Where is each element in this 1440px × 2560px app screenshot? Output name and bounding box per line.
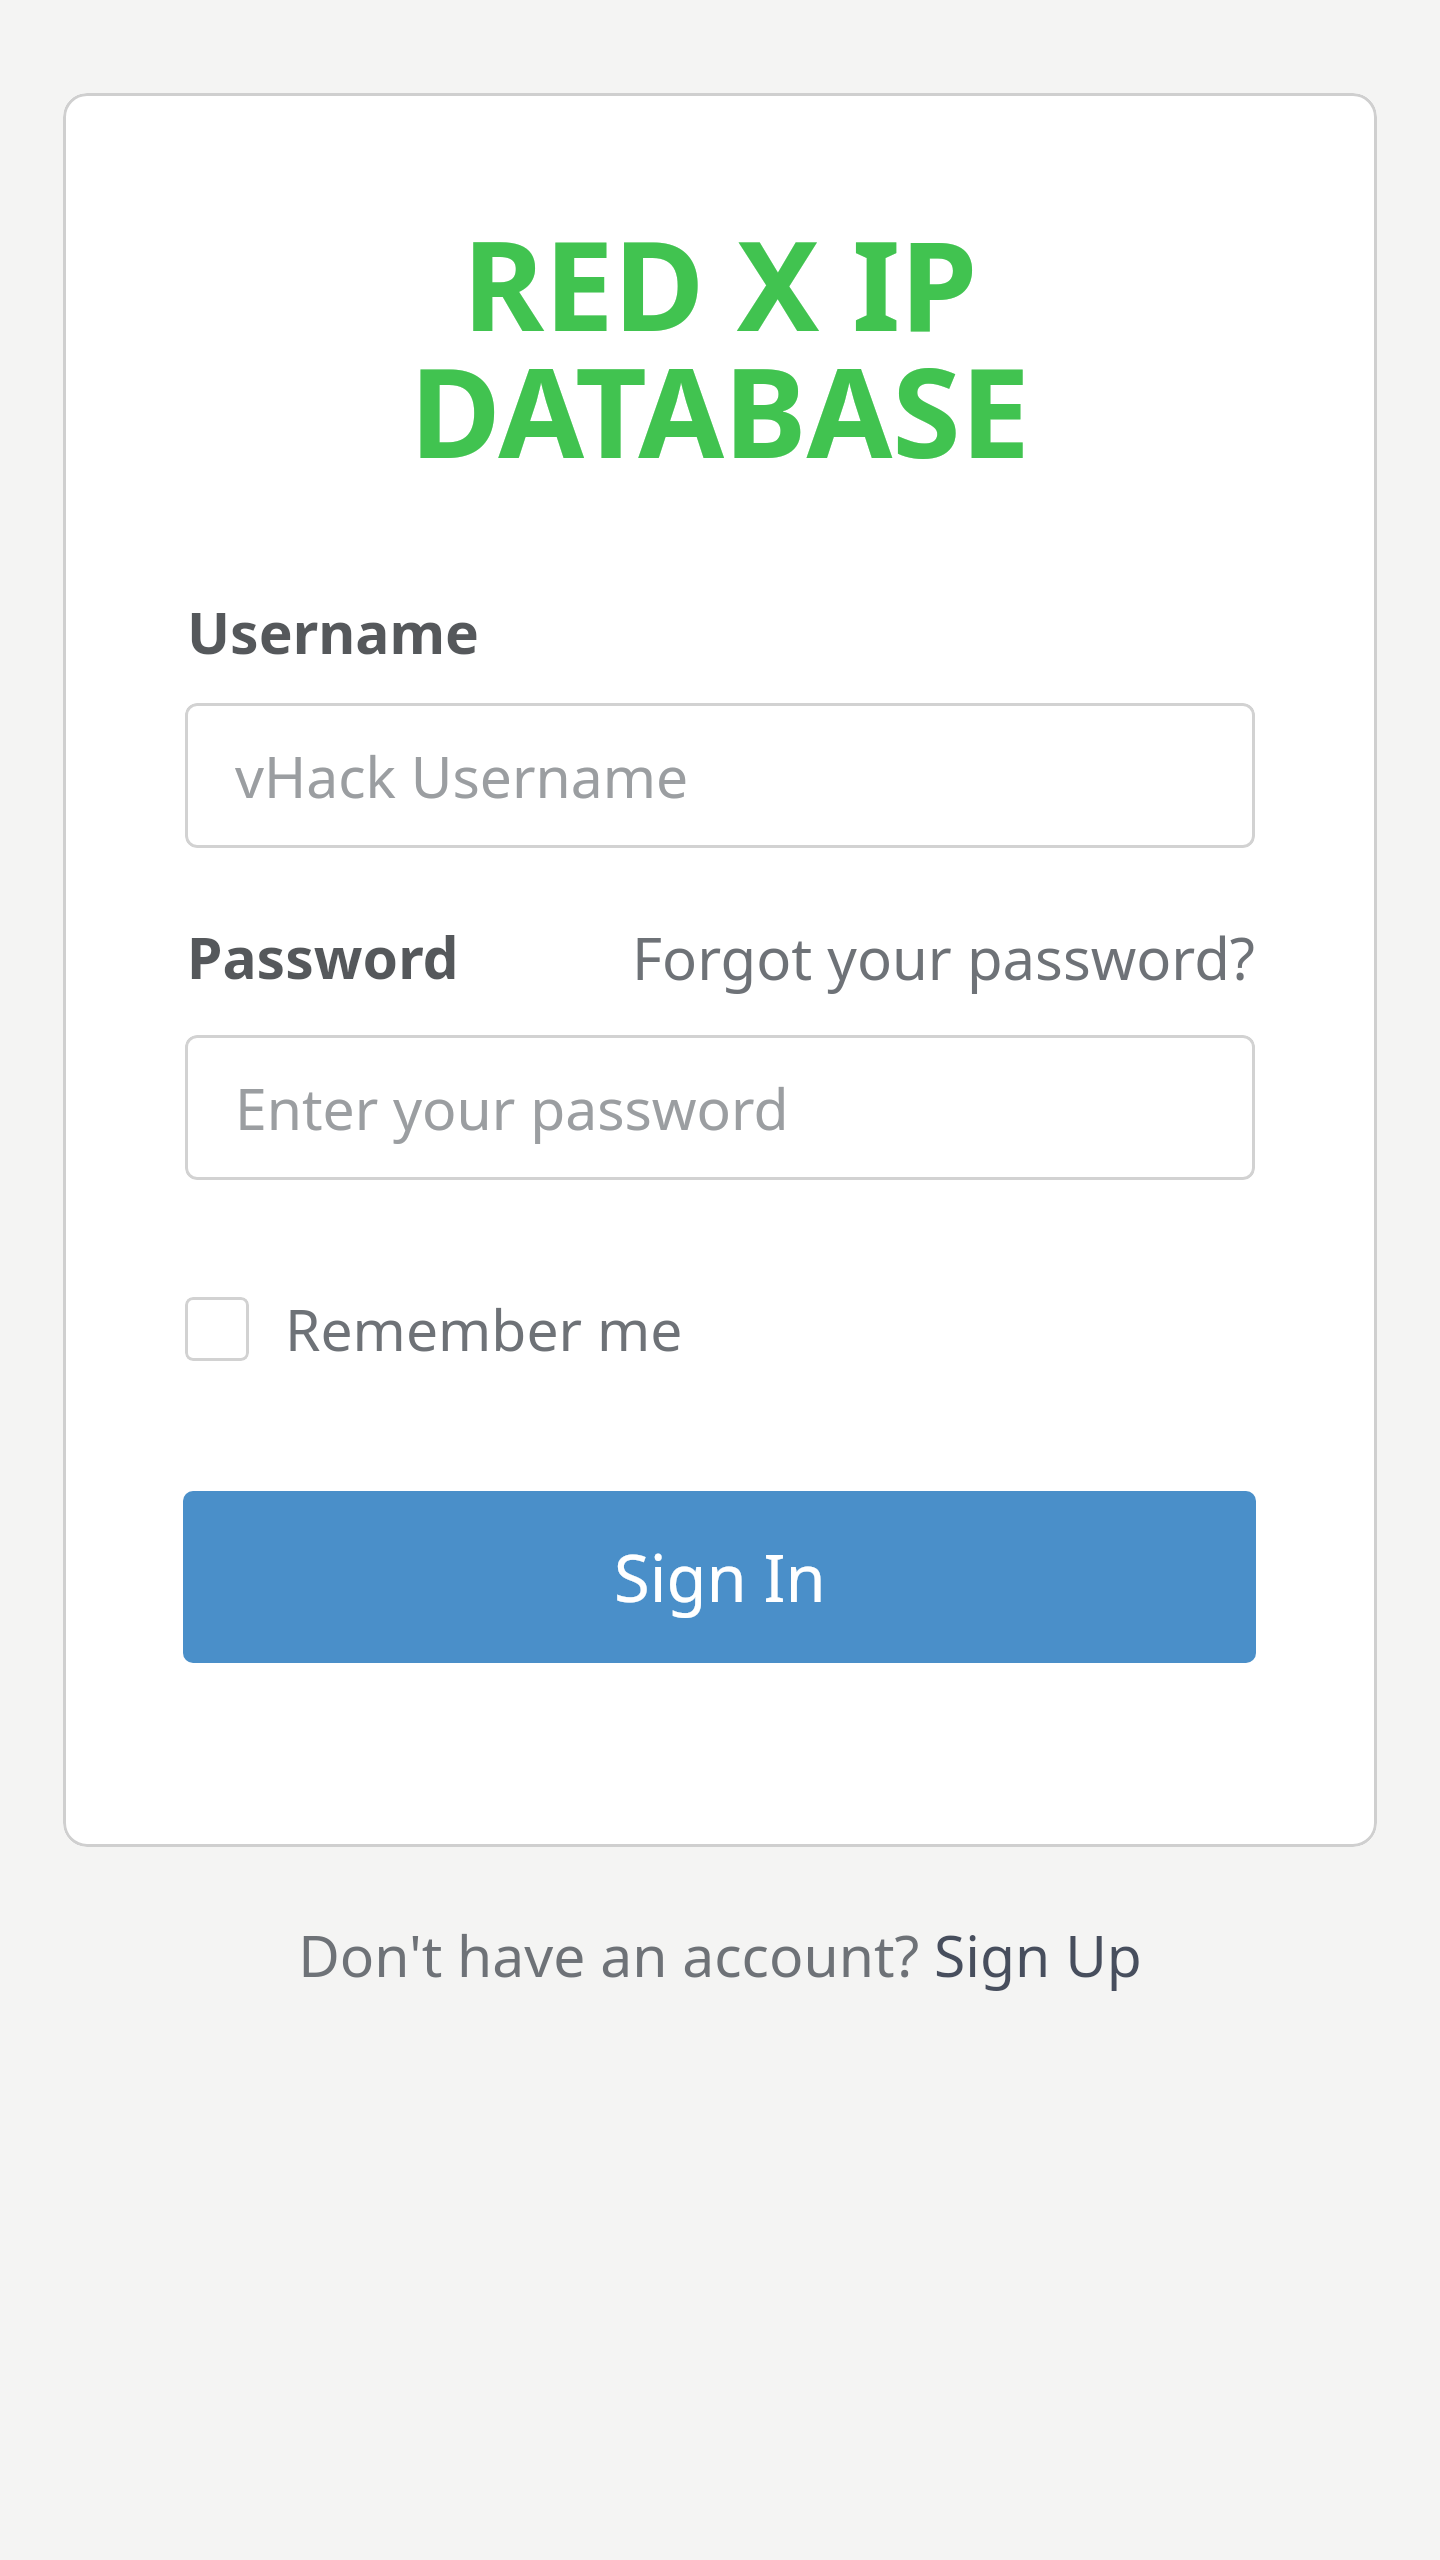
- button[interactable]: Don't have an account? Sign Up: [0, 1916, 1440, 1994]
- staticText: RED X IP DATABASE: [63, 198, 1377, 495]
- staticText: vHack Username: [235, 737, 689, 815]
- button[interactable]: Sign In: [183, 1491, 1256, 1663]
- staticText: Username: [187, 593, 480, 671]
- staticText: Remember me: [285, 1290, 683, 1368]
- button[interactable]: Forgot your password?: [632, 918, 1255, 997]
- staticText: Sign In: [614, 1533, 826, 1622]
- staticText: Password: [187, 918, 459, 996]
- button[interactable]: Enter your password: [185, 1035, 1255, 1180]
- button[interactable]: Remember me: [185, 1290, 683, 1368]
- staticText: Enter your password: [235, 1069, 789, 1147]
- button[interactable]: vHack Username: [185, 703, 1255, 848]
